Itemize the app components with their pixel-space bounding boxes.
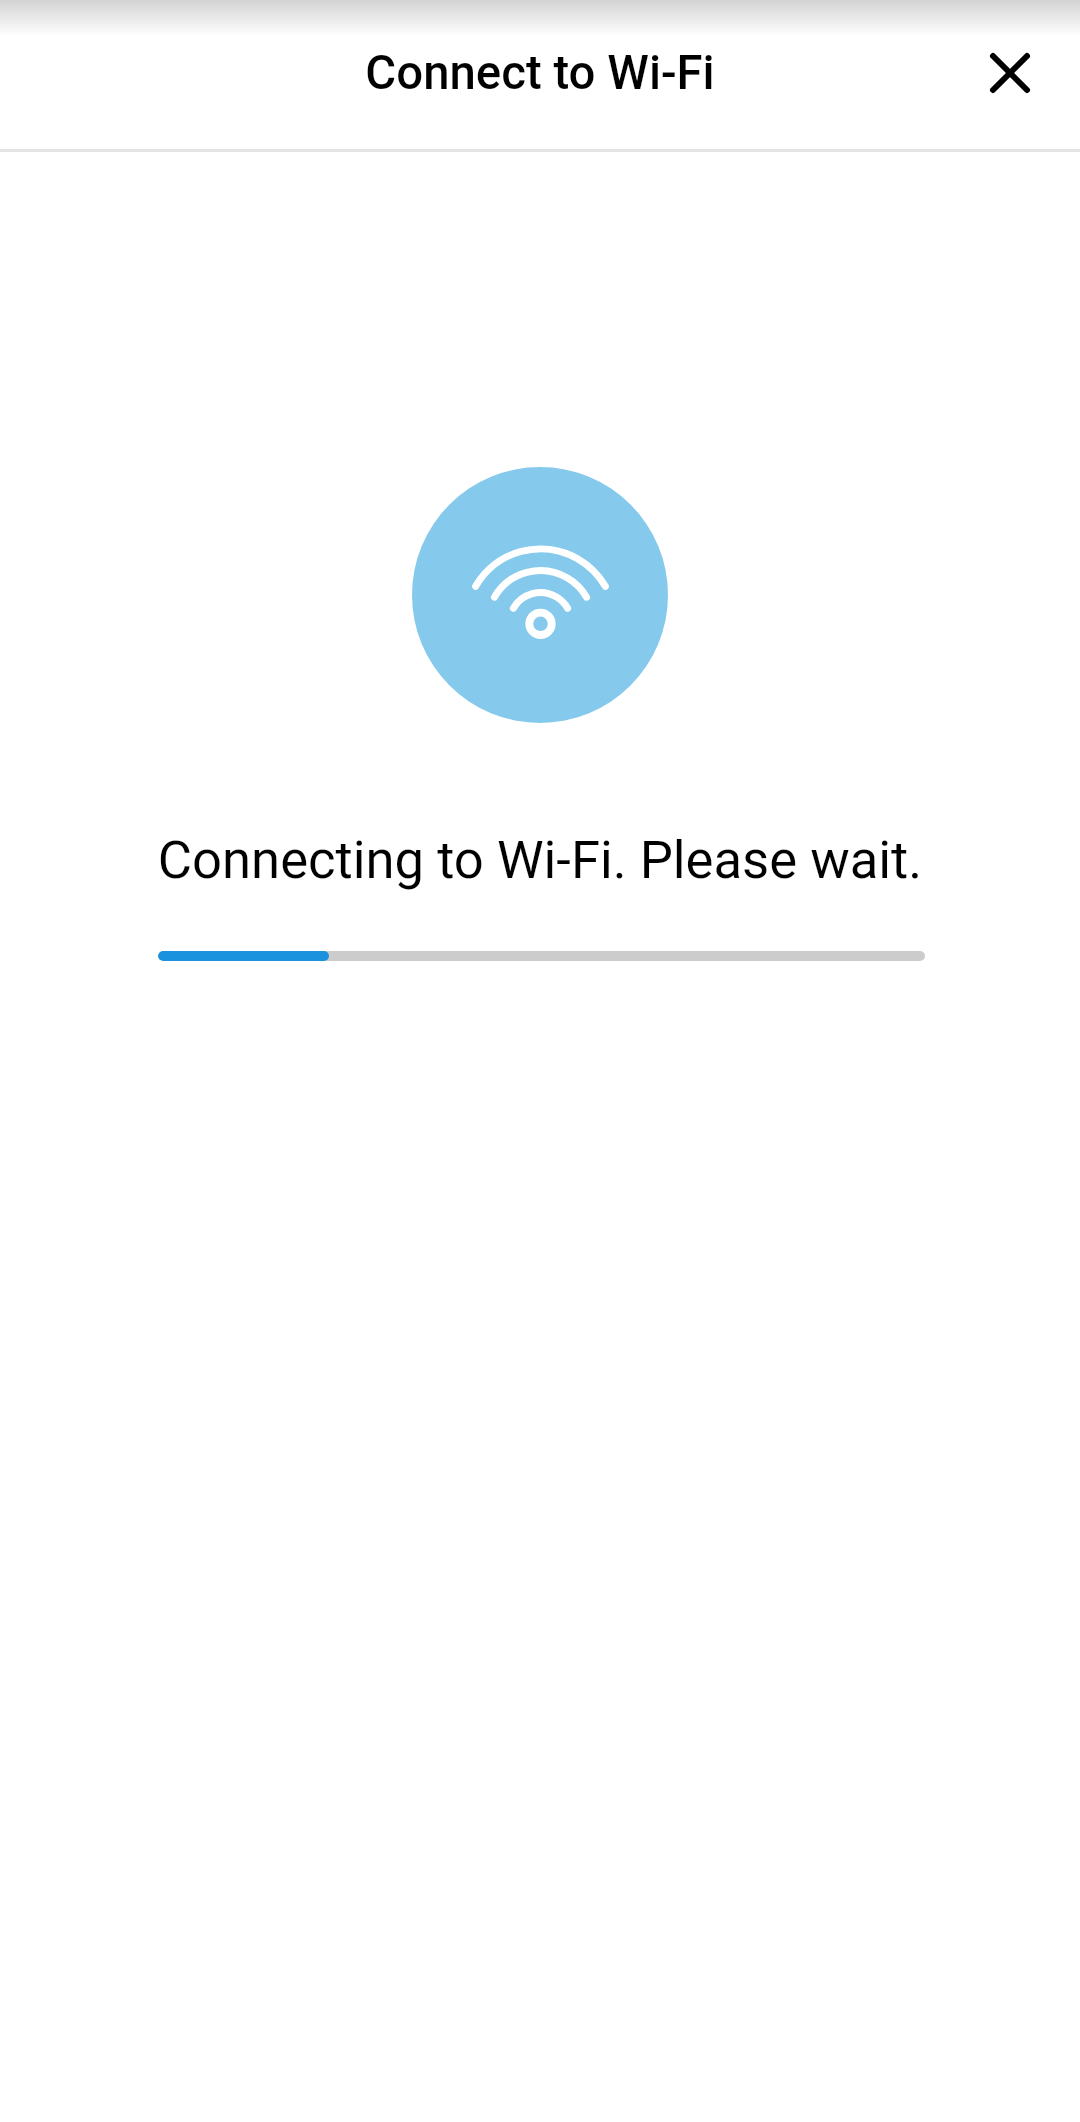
staticText: Connect to Wi-Fi (365, 45, 715, 100)
staticText: Connecting to Wi-Fi. Please wait. (0, 829, 1080, 891)
button[interactable]: Close (962, 25, 1058, 121)
